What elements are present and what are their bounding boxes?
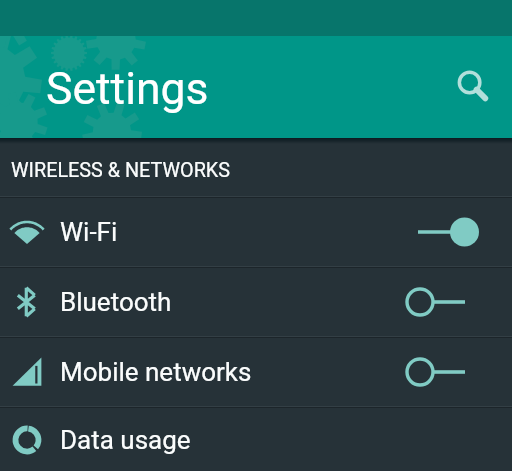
button[interactable]: Search xyxy=(447,59,503,115)
staticText: Bluetooth xyxy=(60,287,172,317)
button[interactable]: Data usage xyxy=(0,408,512,471)
staticText: Data usage xyxy=(60,425,191,455)
button[interactable]: Off xyxy=(385,277,479,327)
button[interactable]: On xyxy=(385,207,479,257)
staticText: Settings xyxy=(46,63,209,115)
button[interactable]: Bluetooth xyxy=(0,268,512,336)
button[interactable]: Mobile networks xyxy=(0,338,512,406)
button[interactable]: Off xyxy=(385,347,479,397)
staticText: WIRELESS & NETWORKS xyxy=(11,159,231,182)
staticText: Wi-Fi xyxy=(60,217,118,247)
button[interactable]: Wi-Fi xyxy=(0,198,512,266)
staticText: Mobile networks xyxy=(60,357,252,387)
